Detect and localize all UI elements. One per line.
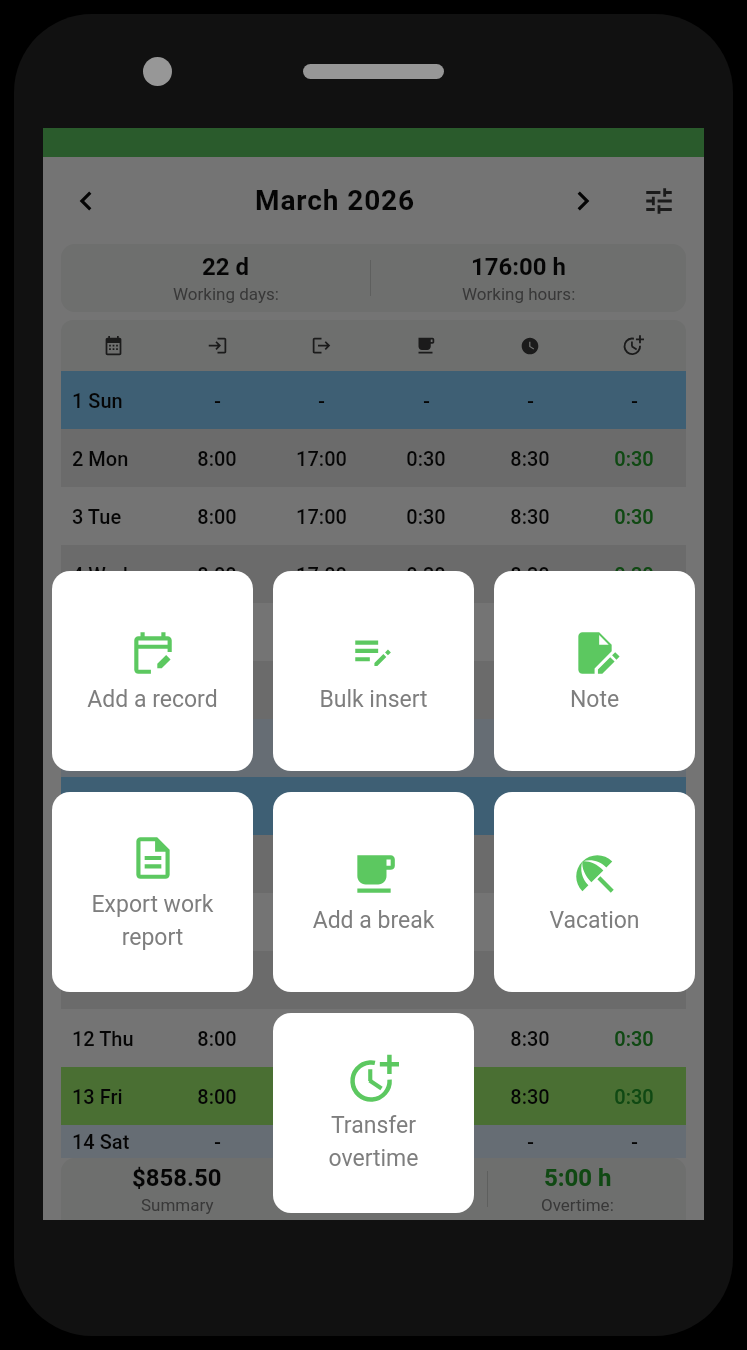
staticText: 8:00: [197, 447, 237, 470]
staticText: 1 Sun: [72, 389, 123, 412]
button[interactable]: Settings: [633, 175, 685, 227]
staticText: March 2026: [255, 184, 416, 217]
button[interactable]: 3 Tue: [61, 487, 686, 545]
staticText: 0:30: [406, 447, 446, 470]
button[interactable]: Next month: [557, 175, 609, 227]
staticText: 8:00: [197, 911, 237, 934]
staticText: 0:30: [406, 911, 446, 934]
button[interactable]: 2 Mon: [61, 429, 686, 487]
button[interactable]: 6 Fri: [61, 661, 686, 719]
staticText: -: [214, 1130, 221, 1153]
staticText: 0:30: [614, 911, 654, 934]
staticText: -: [318, 389, 325, 412]
staticText: 0:30: [614, 563, 654, 586]
staticText: 0:30: [614, 1027, 654, 1050]
button[interactable]: 10 Tue: [61, 893, 686, 951]
button[interactable]: 7 Sat: [61, 719, 686, 777]
button[interactable]: Add a break: [273, 792, 474, 992]
button[interactable]: 1 Sun: [61, 371, 686, 429]
staticText: 0:30: [614, 1085, 654, 1108]
staticText: Bulk insert: [273, 686, 474, 713]
staticText: Add a break: [273, 907, 474, 934]
staticText: 8:00: [197, 679, 237, 702]
staticText: 2 Mon: [72, 447, 129, 470]
staticText: 17:00: [296, 563, 347, 586]
staticText: -: [423, 389, 430, 412]
staticText: 17:00: [296, 505, 347, 528]
staticText: -: [631, 1130, 638, 1153]
staticText: 8:30: [510, 1027, 550, 1050]
button[interactable]: 4 Wed: [61, 545, 686, 603]
staticText: 10 Tue: [72, 911, 133, 934]
button[interactable]: 9 Mon: [61, 835, 686, 893]
button[interactable]: 5 Thu: [61, 603, 686, 661]
button[interactable]: 11 Wed: [61, 951, 686, 1009]
staticText: 0:30: [406, 563, 446, 586]
staticText: 13 Fri: [72, 1085, 123, 1108]
button[interactable]: Export work report: [52, 792, 253, 992]
staticText: -: [527, 389, 534, 412]
staticText: $858.50: [132, 1164, 222, 1192]
staticText: Working days:: [173, 284, 279, 304]
staticText: 8:30: [510, 447, 550, 470]
staticText: 0:30: [406, 505, 446, 528]
button[interactable]: Vacation: [494, 792, 695, 992]
staticText: -: [527, 1130, 534, 1153]
staticText: 5:00 h: [544, 1164, 612, 1192]
button[interactable]: Bulk insert: [273, 571, 474, 771]
staticText: Note: [494, 686, 695, 713]
staticText: 8:00: [197, 1027, 237, 1050]
staticText: 12 Thu: [72, 1027, 134, 1050]
staticText: 8:00: [197, 505, 237, 528]
button[interactable]: Previous month: [60, 175, 112, 227]
staticText: Overtime:: [541, 1195, 614, 1215]
staticText: Summary: [141, 1195, 214, 1215]
staticText: 0:30: [614, 505, 654, 528]
staticText: Transfer overtime: [273, 1112, 474, 1172]
button[interactable]: 13 Fri: [61, 1067, 686, 1125]
button[interactable]: 8 Sun: [61, 777, 686, 835]
button[interactable]: 14 Sat: [61, 1125, 686, 1158]
staticText: 8:30: [510, 563, 550, 586]
staticText: 8:00: [197, 563, 237, 586]
staticText: 0:30: [614, 447, 654, 470]
staticText: 6 Fri: [72, 679, 112, 702]
staticText: Working hours:: [462, 284, 576, 304]
button[interactable]: Note: [494, 571, 695, 771]
button[interactable]: Add a record: [52, 571, 253, 771]
staticText: 17:00: [296, 447, 347, 470]
staticText: 4 Wed: [72, 563, 128, 586]
staticText: 8:30: [510, 1085, 550, 1108]
staticText: 0:30: [406, 679, 446, 702]
button[interactable]: 12 Thu: [61, 1009, 686, 1067]
staticText: 14 Sat: [72, 1130, 130, 1153]
button[interactable]: Transfer overtime: [273, 1013, 474, 1213]
staticText: 0:30: [614, 679, 654, 702]
